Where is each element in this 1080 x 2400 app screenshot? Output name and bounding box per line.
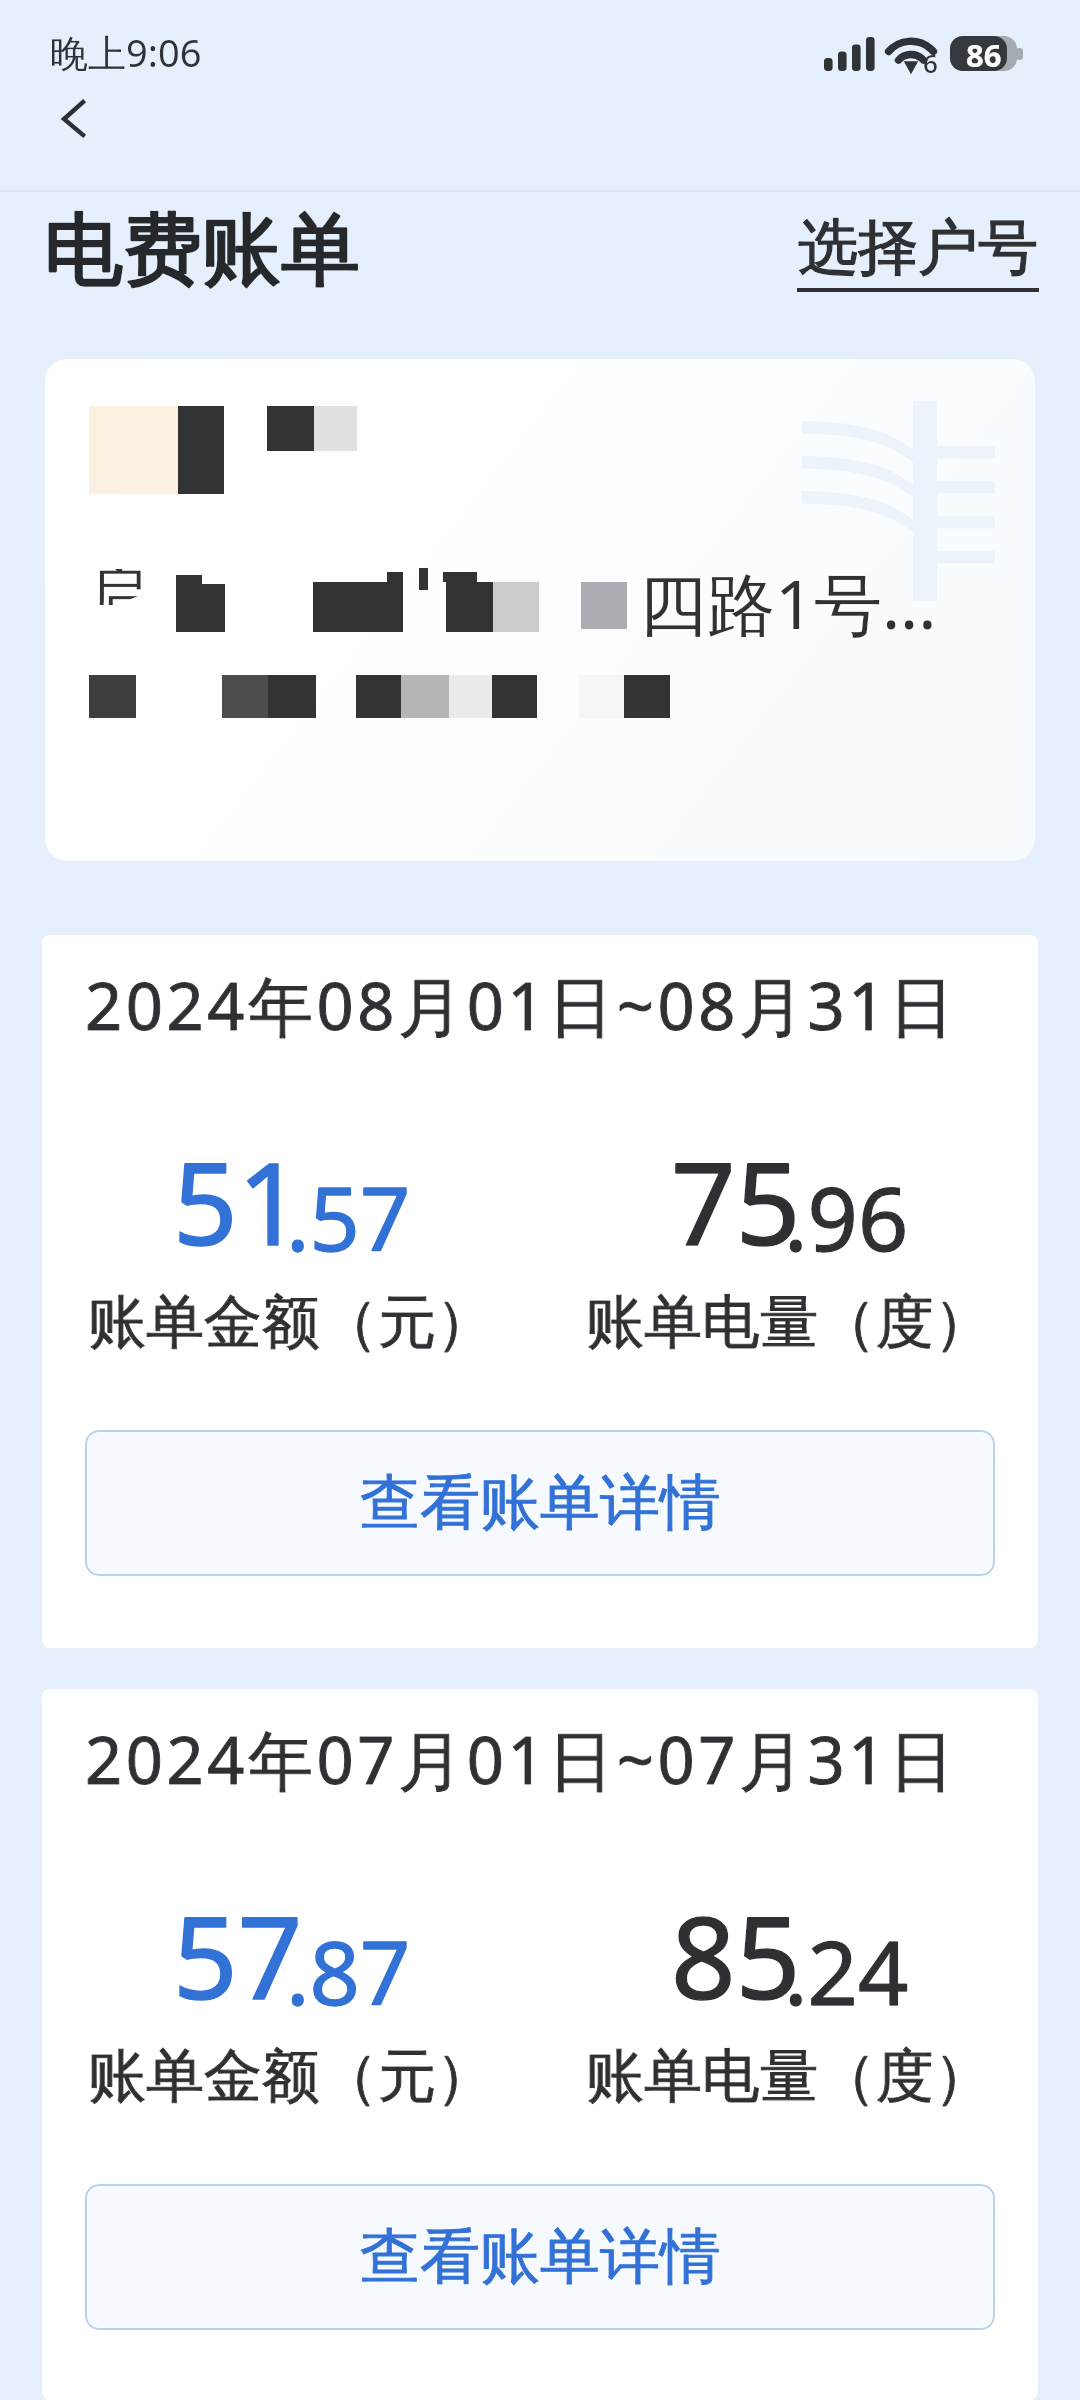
staticText: 启夕 bbox=[88, 569, 154, 605]
button[interactable]: 2024年08月01日~08月31日 bbox=[42, 935, 1038, 1648]
staticText: 85 bbox=[671, 1878, 801, 2032]
staticText: .96 bbox=[784, 1157, 909, 1277]
staticText: .57 bbox=[286, 1157, 411, 1277]
staticText: 账单金额（元） bbox=[88, 2040, 494, 2113]
staticText: .96 bbox=[784, 1157, 909, 1277]
staticText: 电费账单 bbox=[44, 201, 360, 301]
staticText: 晚上9:06 bbox=[50, 26, 202, 78]
staticText: 6 bbox=[923, 45, 938, 80]
staticText: 账单电量（度） bbox=[586, 1286, 992, 1359]
staticText: 2024年07月01日~07月31日 bbox=[85, 1715, 958, 1804]
staticText: .57 bbox=[286, 1157, 411, 1277]
staticText: .87 bbox=[286, 1911, 411, 2031]
button[interactable]: 启夕 bbox=[45, 359, 1035, 861]
button[interactable]: 查看账单详情 bbox=[85, 1430, 995, 1576]
staticText: .24 bbox=[784, 1911, 909, 2031]
staticText: 85 bbox=[671, 1878, 801, 2032]
staticText: 51 bbox=[173, 1124, 303, 1278]
staticText: 57 bbox=[173, 1878, 303, 2032]
staticText: .87 bbox=[286, 1911, 411, 2031]
staticText: 账单金额（元） bbox=[88, 1286, 494, 1359]
staticText: 86 bbox=[966, 34, 1002, 76]
button[interactable]: 选择户号 bbox=[797, 210, 1039, 292]
staticText: .24 bbox=[784, 1911, 909, 2031]
staticText: 查看账单详情 bbox=[360, 1465, 720, 1541]
button[interactable]: 2024年07月01日~07月31日 bbox=[42, 1689, 1038, 2400]
staticText: 账单电量（度） bbox=[586, 2040, 992, 2113]
staticText: 账单电量（度） bbox=[586, 1286, 992, 1359]
staticText: 51 bbox=[173, 1124, 303, 1278]
staticText: 账单电量（度） bbox=[586, 2040, 992, 2113]
button[interactable]: Back bbox=[30, 94, 118, 166]
staticText: 电费账单 bbox=[44, 201, 360, 301]
staticText: 2024年08月01日~08月31日 bbox=[85, 961, 958, 1050]
staticText: 查看账单详情 bbox=[360, 2219, 720, 2295]
staticText: 75 bbox=[671, 1124, 801, 1278]
staticText: 账单金额（元） bbox=[88, 1286, 494, 1359]
staticText: 57 bbox=[173, 1878, 303, 2032]
staticText: 选择户号 bbox=[798, 210, 1038, 286]
staticText: 账单金额（元） bbox=[88, 2040, 494, 2113]
staticText: 75 bbox=[671, 1124, 801, 1278]
staticText: 2024年07月01日~07月31日 bbox=[85, 1715, 958, 1804]
staticText: 2024年08月01日~08月31日 bbox=[85, 961, 958, 1050]
button[interactable]: 查看账单详情 bbox=[85, 2184, 995, 2330]
staticText: 选择户号 bbox=[798, 210, 1038, 286]
staticText: 四路1号... bbox=[639, 556, 937, 649]
staticText: 查看账单详情 bbox=[360, 1465, 720, 1541]
staticText: 查看账单详情 bbox=[360, 2219, 720, 2295]
